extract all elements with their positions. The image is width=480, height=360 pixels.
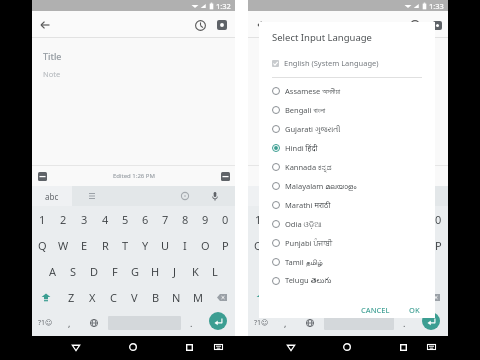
button[interactable]: 3 [74,206,95,232]
button[interactable]: Switch language [80,310,108,336]
button[interactable]: Malayalam മലയാളം [259,176,435,195]
button[interactable]: Switch keyboard [209,338,227,356]
button[interactable]: O [195,232,215,258]
button[interactable]: Hindi हिंदी [259,138,435,157]
button[interactable]: Add [35,169,49,183]
button[interactable]: 5 [328,206,348,232]
button[interactable]: W [53,232,74,258]
button[interactable]: X [82,284,103,310]
button[interactable]: 8 [175,206,195,232]
button[interactable]: I [175,232,195,258]
button[interactable]: V [124,284,145,310]
button[interactable]: M [187,284,208,310]
button[interactable]: 1 [248,206,268,232]
button[interactable]: 2 [268,206,288,232]
button[interactable]: L [418,258,438,284]
button[interactable]: Reminder [189,14,211,36]
button[interactable]: B [145,284,166,310]
button[interactable]: T [328,232,348,258]
button[interactable]: Shift [32,284,60,310]
button[interactable]: , [274,310,296,336]
button[interactable]: 4 [95,206,115,232]
button[interactable]: 9 [195,206,215,232]
button[interactable]: G [125,258,145,284]
button[interactable]: ?1☺ [248,310,274,336]
button[interactable]: Backspace [421,284,448,310]
button[interactable]: Shift [248,284,274,310]
button[interactable]: 4 [308,206,328,232]
button[interactable]: Q [32,232,53,258]
button[interactable]: Switch keyboard [422,338,440,356]
button[interactable]: B [358,284,379,310]
button[interactable]: Switch language [296,310,324,336]
button[interactable]: Tamil தமிழ் [259,252,435,271]
button[interactable]: K [185,258,205,284]
button[interactable]: 5 [115,206,135,232]
button[interactable]: Assamese অসমীয়া [259,81,435,100]
button[interactable]: R [308,232,328,258]
button[interactable]: OK [404,302,425,318]
button[interactable]: E [74,232,95,258]
button[interactable]: Home [124,338,142,356]
button[interactable]: abc [248,186,288,206]
button[interactable]: Back [67,338,85,356]
button[interactable]: A [42,258,63,284]
button[interactable]: 3 [288,206,308,232]
button[interactable]: Punjabi ਪੰਜਾਬੀ [259,233,435,252]
button[interactable]: X [295,284,316,310]
button[interactable]: C [103,284,124,310]
button[interactable]: M [400,284,421,310]
button[interactable]: F [318,258,338,284]
button[interactable]: Home [338,338,356,356]
button[interactable]: Recents [180,338,198,356]
button[interactable]: Q [248,232,268,258]
button[interactable]: More [218,169,232,183]
button[interactable]: Help [177,188,193,204]
button[interactable]: Backspace [208,284,235,310]
button[interactable]: . [181,310,201,336]
button[interactable]: H [145,258,165,284]
button[interactable]: Z [60,284,82,310]
button[interactable]: abc [32,186,72,206]
button[interactable]: E [288,232,308,258]
button[interactable]: 0 [215,206,235,232]
button[interactable]: A [258,258,278,284]
button[interactable]: S [63,258,84,284]
button[interactable]: T [115,232,135,258]
button[interactable]: Back [282,338,300,356]
button[interactable]: Voice input [207,188,223,204]
button[interactable]: Kannada ಕನ್ನಡ [259,157,435,176]
button[interactable]: 2 [53,206,74,232]
button[interactable]: Y [135,232,155,258]
button[interactable]: D [84,258,105,284]
button[interactable]: R [95,232,115,258]
button[interactable]: ?1☺ [32,310,58,336]
button[interactable]: Z [274,284,295,310]
button[interactable]: U [155,232,175,258]
button[interactable]: P [215,232,235,258]
button[interactable]: Voice input [420,188,436,204]
button[interactable]: Language [72,186,112,206]
button[interactable]: Back [33,13,57,37]
button[interactable]: Gujarati ગુજરાતી [259,119,435,138]
button[interactable]: W [268,232,288,258]
button[interactable]: Odia ଓଡ଼ିଆ [259,214,435,233]
button[interactable]: Marathi मराठी [259,195,435,214]
button[interactable]: Bengali বাংলা [259,100,435,119]
button[interactable]: Recents [394,338,412,356]
button[interactable]: Telugu తెలుగు [259,271,435,290]
